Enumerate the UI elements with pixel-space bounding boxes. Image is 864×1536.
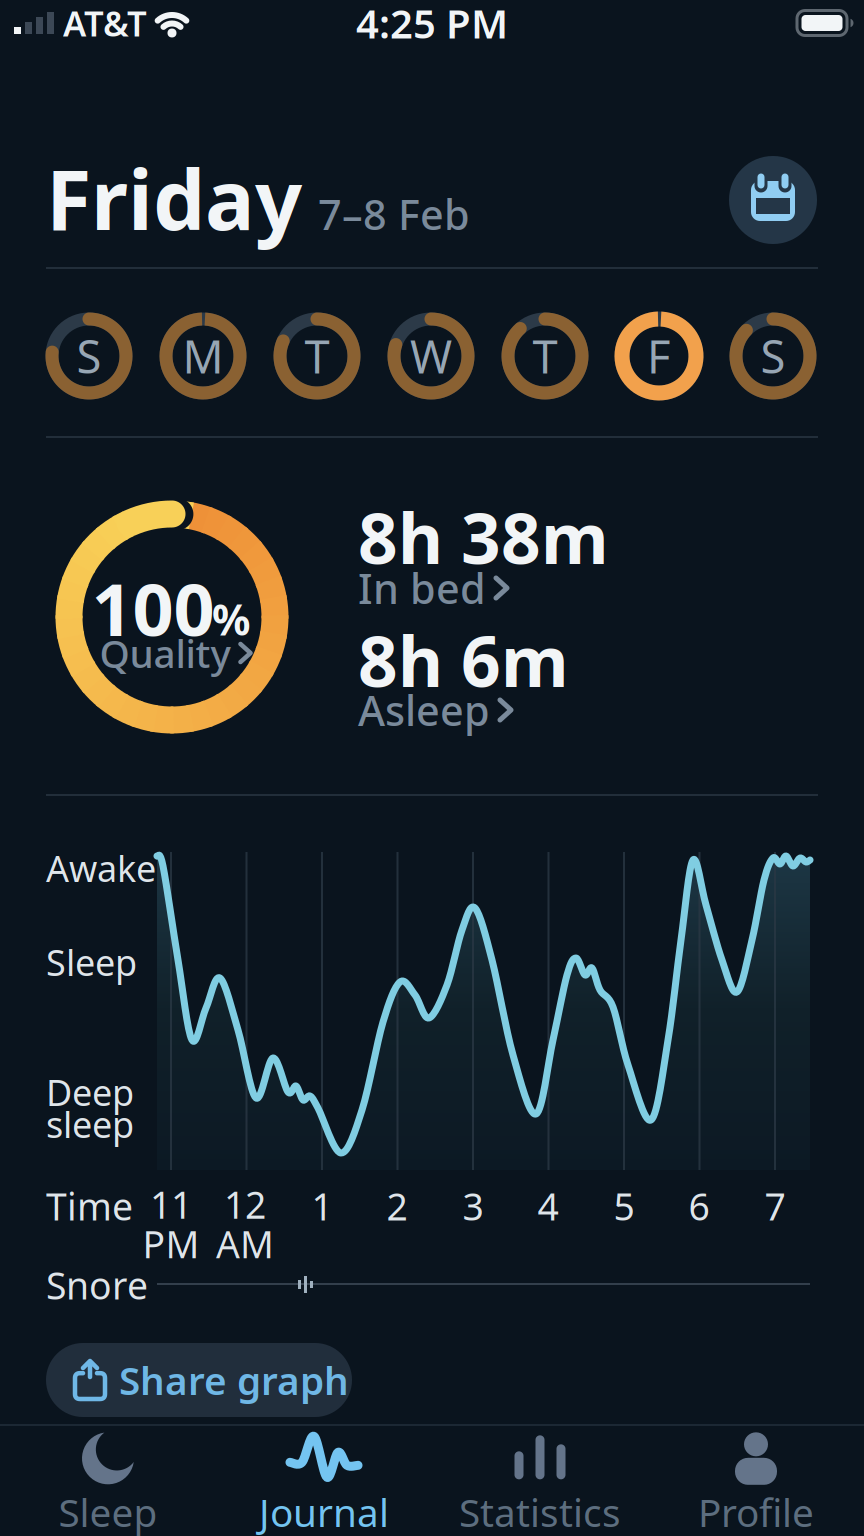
staticText: Deep [46,1068,134,1116]
button[interactable] [729,156,817,244]
button[interactable]: Profile [666,1430,846,1536]
staticText: Friday [46,143,302,253]
staticText: 2 [386,1181,407,1231]
staticText: Sleep [58,1486,157,1536]
staticText: sleep [46,1100,134,1148]
staticText: % [212,591,250,647]
staticText: Asleep [358,683,490,737]
staticText: PM [142,1219,199,1269]
button[interactable]: F [613,310,705,402]
staticText: T [532,326,557,386]
staticText: W [410,326,452,386]
staticText: 4:25 PM [356,0,508,49]
staticText: Share graph [119,1354,349,1406]
button[interactable]: W [385,310,477,402]
staticText: 8h 6m [358,614,569,706]
staticText: 8h 38m [358,491,609,583]
staticText: 6 [688,1181,709,1231]
staticText: 100 [91,560,214,656]
staticText: Profile [698,1486,814,1536]
staticText: 4 [537,1181,558,1231]
button[interactable]: T [499,310,591,402]
button[interactable]: 8h 38m [358,491,609,583]
button[interactable]: 8h 6m [358,614,569,706]
staticText: T [304,326,329,386]
staticText: Statistics [459,1486,621,1536]
button[interactable]: Share graph [46,1343,352,1417]
staticText: 12 [224,1179,266,1229]
staticText: Awake [46,844,156,892]
staticText: 7 [764,1181,785,1231]
button[interactable]: T [271,310,363,402]
button[interactable]: M [157,310,249,402]
button[interactable]: 100 [87,545,263,695]
staticText: F [647,326,671,386]
staticText: M [182,326,223,386]
staticText: Time [46,1181,133,1231]
staticText: Sleep [46,938,137,986]
button[interactable]: Asleep [358,683,511,737]
staticText: S [76,326,101,386]
button[interactable]: Journal [234,1430,414,1536]
staticText: Quality [99,627,230,679]
staticText: S [760,326,785,386]
staticText: Snore [46,1260,148,1310]
button[interactable]: Sleep [18,1430,198,1536]
staticText: 1 [311,1181,332,1231]
button[interactable]: Statistics [450,1430,630,1536]
button[interactable]: S [43,310,135,402]
staticText: 5 [613,1181,634,1231]
staticText: 3 [462,1181,483,1231]
staticText: Journal [259,1486,389,1536]
staticText: 7–8 Feb [318,187,470,241]
button[interactable]: S [727,310,819,402]
staticText: 11 [150,1179,192,1229]
staticText: AM [216,1219,274,1269]
button[interactable]: In bed [358,561,507,615]
staticText: In bed [358,561,486,615]
staticText: AT&T [63,0,147,46]
